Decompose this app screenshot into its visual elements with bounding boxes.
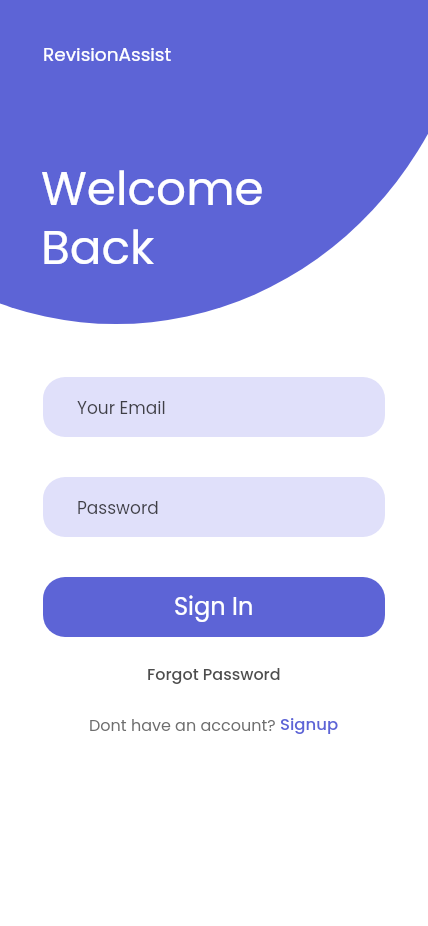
button[interactable]: Forgot Password (131, 657, 297, 691)
button[interactable]: Your Email (43, 377, 385, 437)
staticText: Your Email (77, 396, 166, 420)
staticText: Sign In (174, 590, 254, 624)
button[interactable]: Password (43, 477, 385, 537)
staticText: Password (77, 496, 159, 520)
staticText: Dont have an account? (89, 714, 280, 736)
staticText: Forgot Password (147, 663, 281, 685)
button[interactable]: Sign In (43, 577, 385, 637)
staticText: Welcome Back (41, 156, 264, 281)
staticText: Signup (280, 713, 339, 736)
staticText: RevisionAssist (43, 42, 172, 68)
button[interactable]: Signup (280, 713, 339, 736)
